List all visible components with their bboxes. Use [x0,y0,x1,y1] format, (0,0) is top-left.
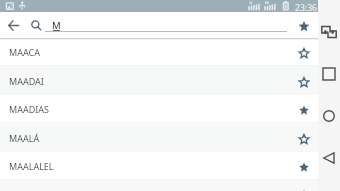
button[interactable]: MAADIAS [0,95,318,123]
button[interactable]: Remove from favourites [293,98,315,120]
staticText: MAALALEL [9,160,54,172]
button[interactable]: MAACA [0,38,318,66]
button[interactable]: Add to favourites [293,127,315,149]
staticText: 23:36 [295,2,317,14]
button[interactable]: Add to favourites [293,184,315,191]
button[interactable]: Rotate screen [318,21,340,43]
button[interactable]: Navigate back [2,14,24,36]
staticText: MAACA [9,46,40,58]
button[interactable]: Back [318,147,340,169]
staticText: MAADIAS [9,103,49,115]
button[interactable]: Home [318,105,340,127]
staticText: MAADAI [9,75,44,87]
button[interactable]: MAALALEL [0,152,318,180]
button[interactable]: Remove from favourites [293,155,315,177]
button[interactable]: Recent apps [318,63,340,85]
button[interactable]: Show favourites [293,14,315,36]
staticText: MAALÁ [9,132,40,144]
staticText: M [52,19,61,32]
button[interactable]: MAALÁ [0,123,318,152]
button[interactable]: Add to favourites [293,41,315,63]
button[interactable]: MAADAI [0,66,318,96]
button[interactable]: Add to favourites [293,70,315,92]
